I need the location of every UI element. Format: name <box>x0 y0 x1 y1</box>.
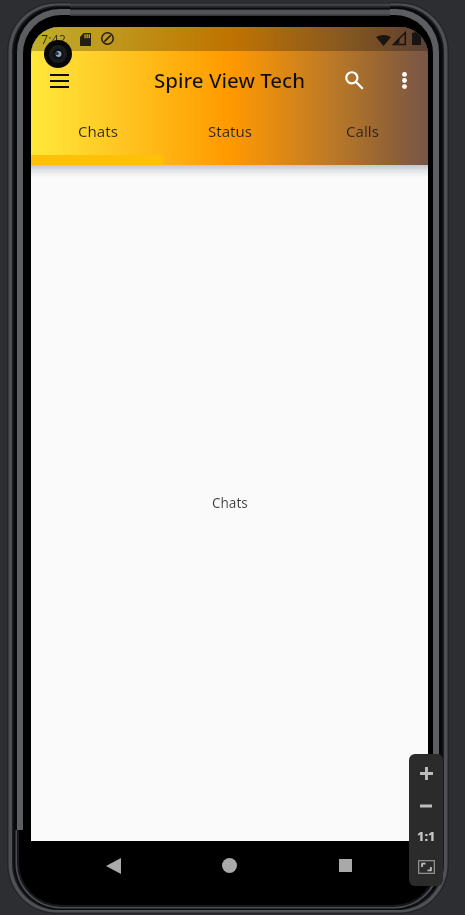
button[interactable]: Chats <box>31 110 164 155</box>
button[interactable]: Recent apps <box>287 841 403 890</box>
button[interactable]: More options <box>380 51 428 110</box>
button[interactable]: Back <box>56 841 171 890</box>
staticText: 7:42 <box>41 31 66 48</box>
button[interactable]: Zoom out <box>409 789 443 823</box>
button[interactable]: Search <box>328 51 380 110</box>
button[interactable]: Zoom in <box>409 756 443 790</box>
staticText: Status <box>208 121 252 141</box>
staticText: Chats <box>212 494 248 512</box>
staticText: Chats <box>78 121 118 141</box>
button[interactable]: Zoom to fit <box>409 850 443 884</box>
button[interactable]: Status <box>164 110 296 155</box>
button[interactable]: Open navigation drawer <box>31 51 87 110</box>
staticText: Spire View Tech <box>154 66 306 94</box>
button[interactable]: Home <box>171 841 287 890</box>
staticText: 1:1 <box>417 827 436 845</box>
staticText: Calls <box>346 121 379 141</box>
button[interactable]: Calls <box>296 110 428 155</box>
button[interactable]: 1:1 <box>409 819 443 853</box>
